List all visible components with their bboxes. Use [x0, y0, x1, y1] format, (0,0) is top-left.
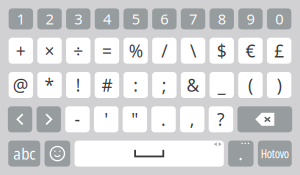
staticText: )	[277, 73, 282, 96]
button[interactable]: ;	[152, 72, 176, 98]
button[interactable]: $	[209, 38, 234, 64]
staticText: '	[104, 108, 108, 131]
staticText: ,	[190, 108, 195, 131]
staticText: 2	[45, 9, 53, 29]
button[interactable]: -	[65, 106, 90, 132]
button[interactable]: ÷	[66, 38, 90, 64]
button[interactable]: _	[209, 72, 234, 98]
staticText: (	[248, 73, 253, 96]
staticText: +	[16, 39, 26, 62]
staticText: \	[190, 39, 196, 62]
staticText: 4	[103, 9, 111, 29]
staticText: %	[129, 39, 143, 62]
button[interactable]: 0	[267, 8, 291, 29]
button[interactable]: /	[152, 38, 176, 64]
button[interactable]: .	[151, 106, 176, 132]
staticText: !	[76, 73, 81, 96]
button[interactable]: Period	[228, 141, 254, 167]
staticText: _	[218, 73, 226, 96]
button[interactable]: 4	[95, 8, 119, 29]
staticText: -	[74, 108, 80, 131]
button[interactable]: Emoji	[44, 141, 70, 167]
button[interactable]: %	[123, 38, 148, 64]
button[interactable]: 6	[152, 8, 176, 29]
staticText: .	[238, 142, 243, 165]
button[interactable]: *	[37, 72, 62, 98]
button[interactable]: 9	[238, 8, 263, 29]
staticText: ÷	[73, 39, 83, 62]
staticText: 7	[189, 9, 197, 29]
staticText: 0	[275, 9, 283, 29]
button[interactable]: €	[238, 38, 263, 64]
staticText: .	[161, 108, 166, 131]
staticText: Hotovo	[261, 145, 289, 162]
staticText: 8	[218, 9, 226, 29]
staticText: "	[131, 108, 138, 131]
staticText: 6	[160, 9, 168, 29]
button[interactable]: Previous	[8, 106, 32, 132]
staticText: =	[102, 39, 112, 62]
button[interactable]: ,	[180, 106, 204, 132]
staticText: 3	[74, 9, 82, 29]
staticText: 9	[246, 9, 254, 29]
button[interactable]: 1	[9, 8, 33, 29]
staticText: 5	[132, 9, 140, 29]
button[interactable]: #	[95, 72, 119, 98]
button[interactable]: Delete	[237, 106, 292, 132]
button[interactable]: !	[66, 72, 90, 98]
staticText: #	[101, 73, 112, 96]
staticText: @	[13, 73, 29, 96]
staticText: ×	[44, 39, 54, 62]
button[interactable]: :	[123, 72, 148, 98]
button[interactable]: &	[181, 72, 205, 98]
staticText: ;	[162, 73, 167, 96]
button[interactable]: )	[267, 72, 291, 98]
button[interactable]: 3	[66, 8, 90, 29]
button[interactable]: £	[267, 38, 291, 64]
staticText: $	[217, 39, 227, 62]
button[interactable]: '	[94, 106, 118, 132]
button[interactable]: Space	[74, 141, 224, 167]
button[interactable]: 8	[209, 8, 234, 29]
button[interactable]: ×	[37, 38, 62, 64]
staticText: ?	[217, 108, 225, 131]
button[interactable]: "	[123, 106, 147, 132]
staticText: £	[274, 39, 284, 62]
staticText: abc	[13, 143, 35, 164]
staticText: €	[245, 39, 255, 62]
button[interactable]: 2	[37, 8, 62, 29]
staticText: /	[161, 39, 167, 62]
staticText: &	[186, 73, 199, 96]
button[interactable]: \	[181, 38, 205, 64]
button[interactable]: +	[9, 38, 33, 64]
button[interactable]: Hotovo	[258, 141, 292, 167]
button[interactable]: ?	[209, 106, 233, 132]
button[interactable]: 7	[181, 8, 205, 29]
button[interactable]: 5	[123, 8, 148, 29]
button[interactable]: Next	[36, 106, 61, 132]
button[interactable]: =	[95, 38, 119, 64]
staticText: *	[44, 73, 54, 96]
staticText: :	[133, 73, 138, 96]
button[interactable]: (	[238, 72, 263, 98]
button[interactable]: @	[9, 72, 33, 98]
staticText: 1	[17, 9, 25, 29]
button[interactable]: abc	[8, 141, 40, 167]
